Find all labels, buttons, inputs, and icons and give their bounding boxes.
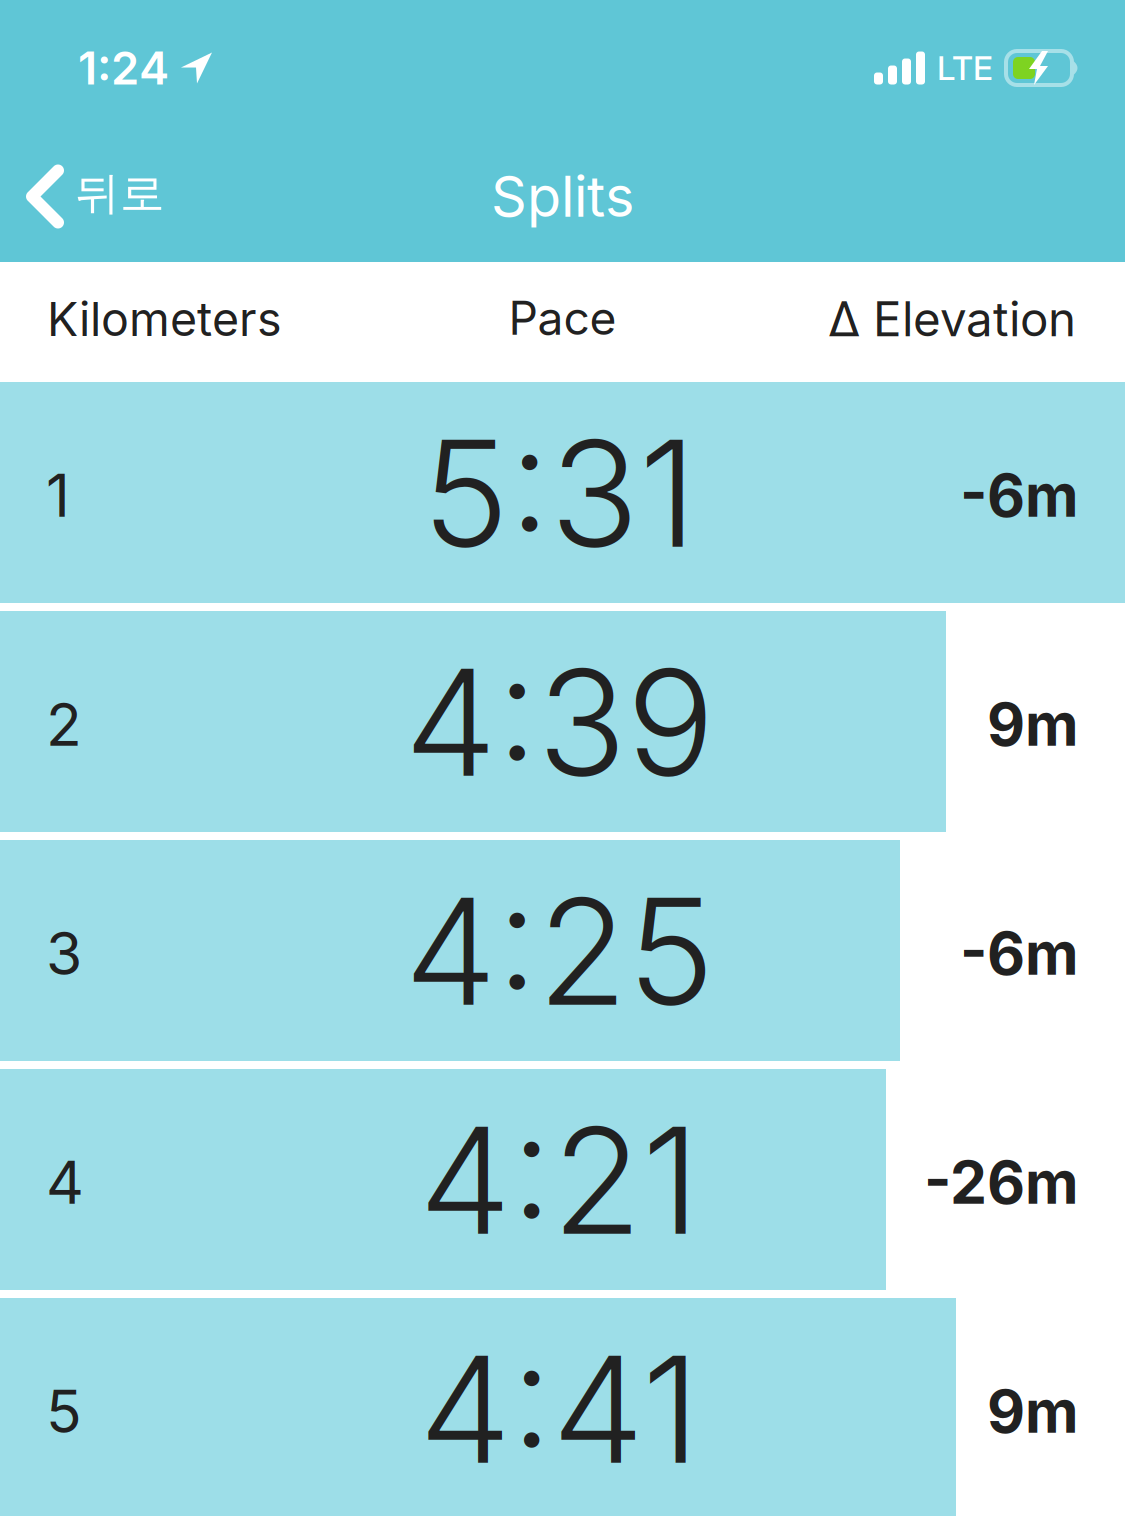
staticText: 4:39 (404, 634, 714, 811)
staticText: 9m (987, 689, 1079, 760)
staticText: 1:24 (78, 41, 169, 95)
button[interactable]: 1 (0, 382, 1125, 603)
staticText: -6m (960, 918, 1079, 989)
staticText: 1 (46, 460, 70, 531)
staticText: 2 (46, 689, 82, 760)
staticText: 9m (987, 1376, 1079, 1447)
button[interactable]: 5 (0, 1298, 1125, 1516)
button[interactable]: 뒤로 (0, 132, 189, 261)
staticText: 3 (46, 918, 82, 989)
staticText: 5:31 (422, 405, 697, 582)
staticText: -26m (924, 1147, 1079, 1218)
staticText: 4:21 (419, 1092, 700, 1269)
button[interactable]: 2 (0, 611, 1125, 832)
staticText: 5 (46, 1376, 82, 1447)
staticText: Kilometers (47, 291, 282, 347)
staticText: Pace (508, 290, 616, 346)
staticText: LTE (937, 48, 993, 88)
button[interactable]: 4 (0, 1069, 1125, 1290)
staticText: -6m (960, 460, 1079, 531)
staticText: Δ Elevation (828, 290, 1076, 348)
staticText: Splits (491, 163, 634, 230)
staticText: 4:41 (419, 1321, 700, 1498)
button[interactable]: 3 (0, 840, 1125, 1061)
staticText: 4:25 (404, 863, 714, 1040)
staticText: 뒤로 (75, 165, 165, 221)
staticText: 4 (46, 1147, 84, 1218)
